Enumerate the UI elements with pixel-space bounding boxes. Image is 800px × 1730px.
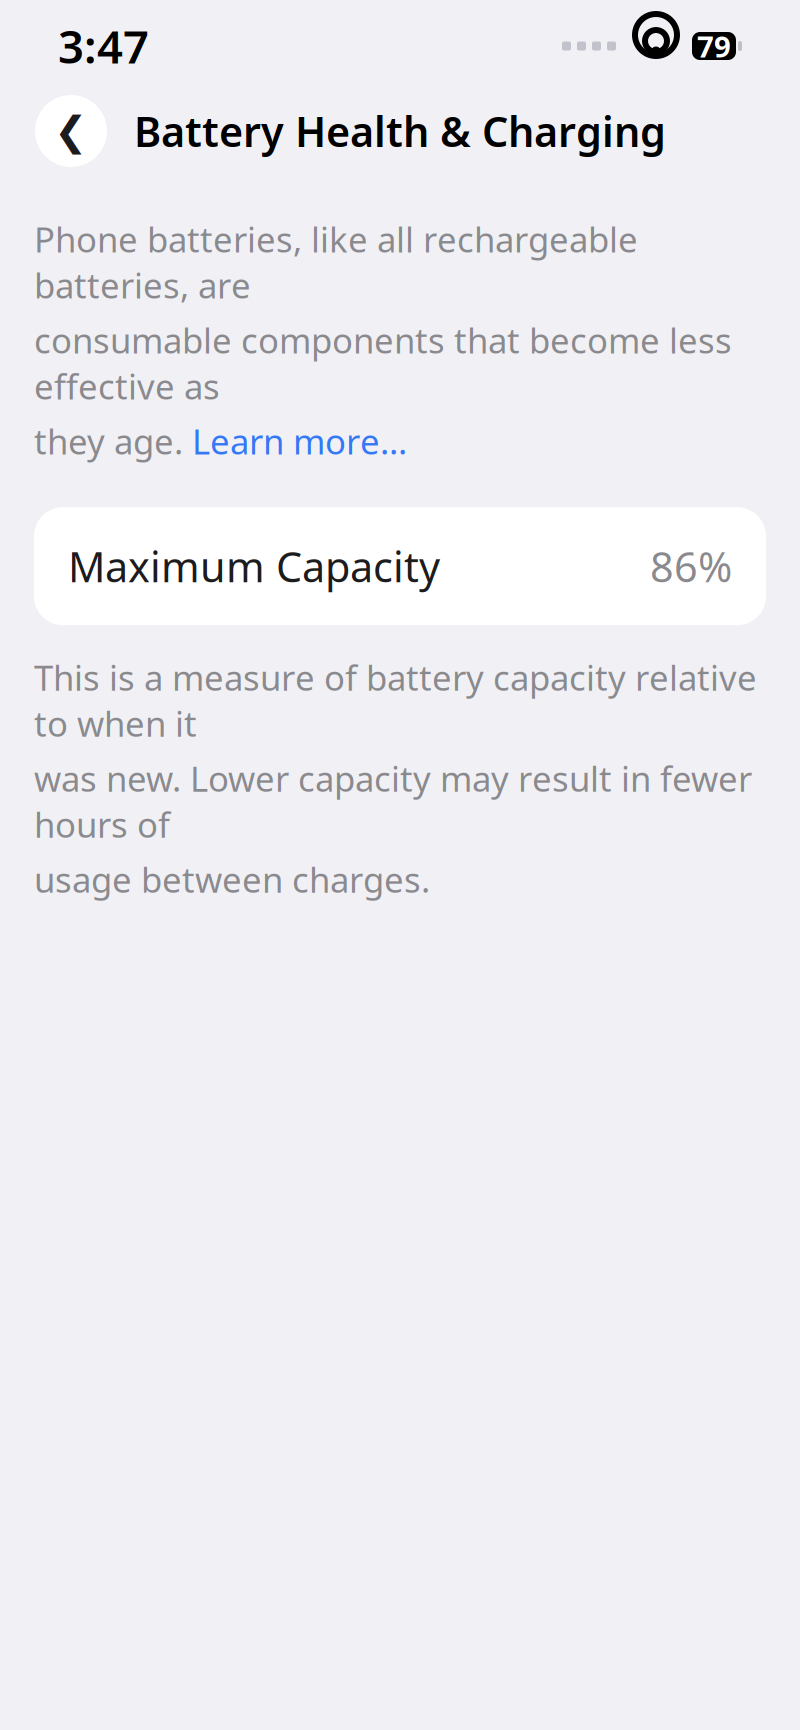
button[interactable]: Learn more...	[192, 418, 407, 464]
staticText: Battery Health & Charging	[134, 104, 666, 158]
staticText: they age.	[34, 418, 192, 464]
button[interactable]: Back	[35, 95, 107, 167]
staticText: 3:47	[58, 16, 149, 76]
staticText: ❮	[54, 108, 88, 154]
staticText: Learn more...	[192, 418, 407, 464]
staticText: This is a measure of battery capacity re…	[34, 654, 757, 746]
staticText: Phone batteries, like all rechargeable b…	[34, 216, 638, 308]
button[interactable]: Maximum Capacity	[34, 507, 766, 625]
staticText: Maximum Capacity	[68, 539, 440, 594]
staticText: consumable components that become less e…	[34, 317, 732, 409]
staticText: was new. Lower capacity may result in fe…	[34, 755, 752, 847]
staticText: usage between charges.	[34, 856, 430, 902]
staticText: 79	[697, 26, 731, 65]
staticText: 86%	[650, 539, 732, 594]
